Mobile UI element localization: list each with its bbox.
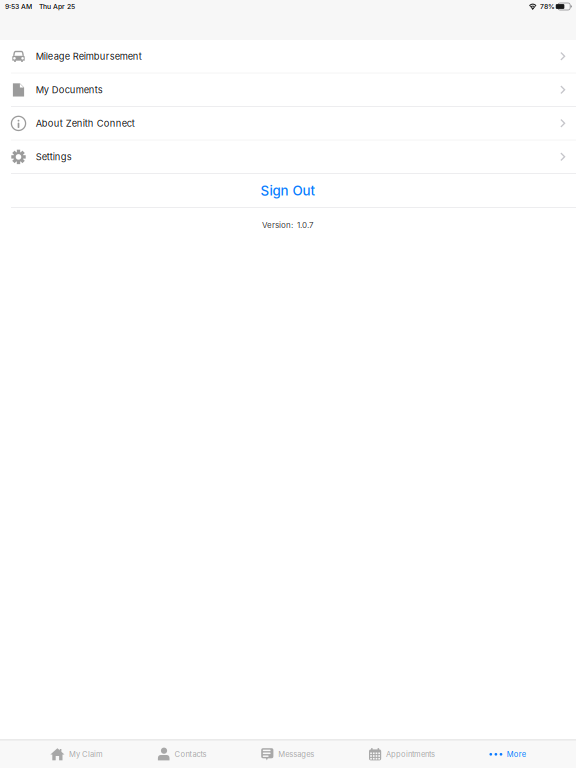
staticText: 9:53 AM	[5, 2, 32, 11]
button[interactable]: Mileage Reimbursement	[0, 40, 576, 73]
button[interactable]: More	[489, 740, 526, 768]
button[interactable]: My Documents	[0, 73, 576, 107]
staticText: My Claim	[69, 750, 103, 759]
button[interactable]: Sign Out	[0, 174, 576, 208]
staticText: Contacts	[174, 750, 206, 759]
button[interactable]: Contacts	[157, 740, 206, 768]
button[interactable]: About Zenith Connect	[0, 107, 576, 140]
staticText: Messages	[278, 750, 314, 759]
staticText: My Documents	[36, 84, 103, 96]
button[interactable]: My Claim	[50, 740, 103, 768]
button[interactable]: Appointments	[369, 740, 435, 768]
staticText: 78%	[540, 2, 555, 11]
staticText: Appointments	[386, 750, 435, 759]
staticText: Sign Out	[260, 183, 315, 199]
staticText: Settings	[36, 151, 72, 163]
staticText: Thu Apr 25	[39, 2, 75, 11]
staticText: Version: 1.0.7	[262, 220, 314, 230]
button[interactable]: Messages	[261, 740, 314, 768]
button[interactable]: Settings	[0, 140, 576, 174]
staticText: More	[507, 750, 526, 759]
staticText: Mileage Reimbursement	[36, 51, 142, 62]
staticText: About Zenith Connect	[36, 118, 135, 129]
